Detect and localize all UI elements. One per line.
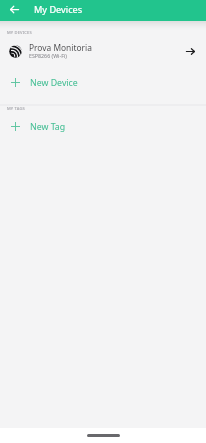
staticText: MY TAGS [7, 106, 25, 112]
button[interactable]: New Device [0, 72, 206, 93]
staticText: New Tag [30, 121, 66, 133]
button[interactable]: Open device [185, 46, 196, 57]
staticText: My Devices [34, 3, 83, 16]
staticText: MY DEVICES [7, 30, 32, 36]
button[interactable]: New Tag [0, 116, 206, 137]
staticText: New Device [30, 77, 78, 89]
staticText: ESP8266 (Wi-Fi) [29, 52, 67, 59]
staticText: Prova Monitoria [29, 42, 92, 53]
button[interactable]: Back [6, 1, 23, 18]
button[interactable]: Prova Monitoria [0, 40, 206, 62]
